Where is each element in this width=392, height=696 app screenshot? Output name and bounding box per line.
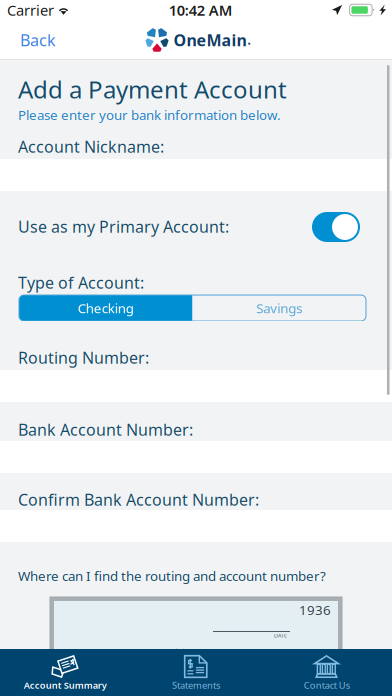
staticText: Add a Payment Account xyxy=(18,73,287,105)
button[interactable]: Contact Us xyxy=(261,649,392,696)
staticText: Carrier xyxy=(7,0,54,20)
staticText: Type of Account: xyxy=(18,272,144,293)
staticText: DATE xyxy=(274,632,287,639)
staticText: Use as my Primary Account: xyxy=(18,216,229,237)
button[interactable]: Account Summary xyxy=(0,649,131,696)
staticText: Please enter your bank information below… xyxy=(18,106,281,124)
staticText: Back xyxy=(20,29,56,51)
staticText: Account Nickname: xyxy=(18,136,164,157)
button[interactable]: Savings xyxy=(192,295,366,321)
staticText: | $ xyxy=(174,646,186,658)
staticText: PAY TO THE xyxy=(60,649,88,656)
button[interactable]: Statements xyxy=(131,649,261,696)
staticText: 1936 xyxy=(299,601,331,619)
staticText: Where can I find the routing and account… xyxy=(18,567,326,585)
button[interactable]: Use as my Primary Account xyxy=(312,212,360,242)
staticText: Routing Number: xyxy=(18,347,149,368)
staticText: OneMain xyxy=(173,29,246,51)
button[interactable]: Checking xyxy=(19,295,192,321)
staticText: . xyxy=(247,32,250,48)
staticText: Checking xyxy=(78,299,134,317)
staticText: Statements xyxy=(172,679,220,691)
staticText: 10:42 AM xyxy=(169,0,233,20)
staticText: Contact Us xyxy=(304,679,350,691)
staticText: Savings xyxy=(256,299,302,317)
button[interactable]: Back xyxy=(0,20,76,60)
staticText: Bank Account Number: xyxy=(18,419,193,440)
staticText: Account Summary xyxy=(24,679,107,691)
staticText: Confirm Bank Account Number: xyxy=(18,489,259,510)
